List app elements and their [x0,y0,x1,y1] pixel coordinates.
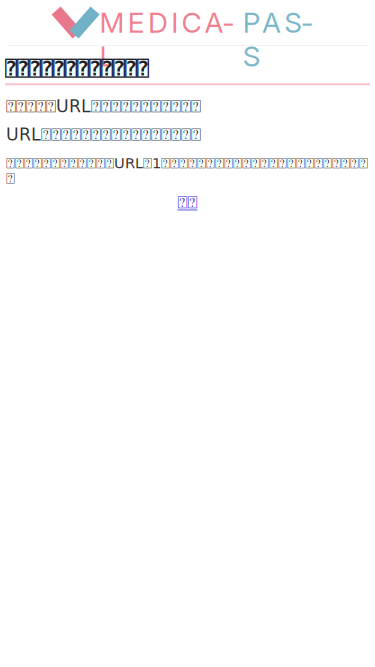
staticText: ⍰⍰ [177,194,197,212]
staticText: ⍰⍰⍰⍰⍰URL⍰⍰⍰⍰⍰⍰⍰⍰⍰⍰⍰ [6,96,201,116]
staticText: ⍰⍰⍰⍰⍰⍰⍰⍰⍰⍰⍰⍰URL⍰1⍰⍰⍰⍰⍰⍰⍰⍰⍰⍰⍰⍰⍰⍰⍰⍰⍰⍰⍰⍰⍰⍰⍰… [6,155,368,186]
staticText: URL⍰⍰⍰⍰⍰⍰⍰⍰⍰⍰⍰⍰⍰⍰⍰⍰ [6,124,201,145]
staticText: PASS [243,6,323,39]
staticText: MEDICAL [100,6,243,39]
staticText: ⍰⍰⍰⍰⍰⍰⍰⍰⍰⍰⍰⍰ [5,57,149,80]
button[interactable]: ⍰⍰ [0,194,375,212]
